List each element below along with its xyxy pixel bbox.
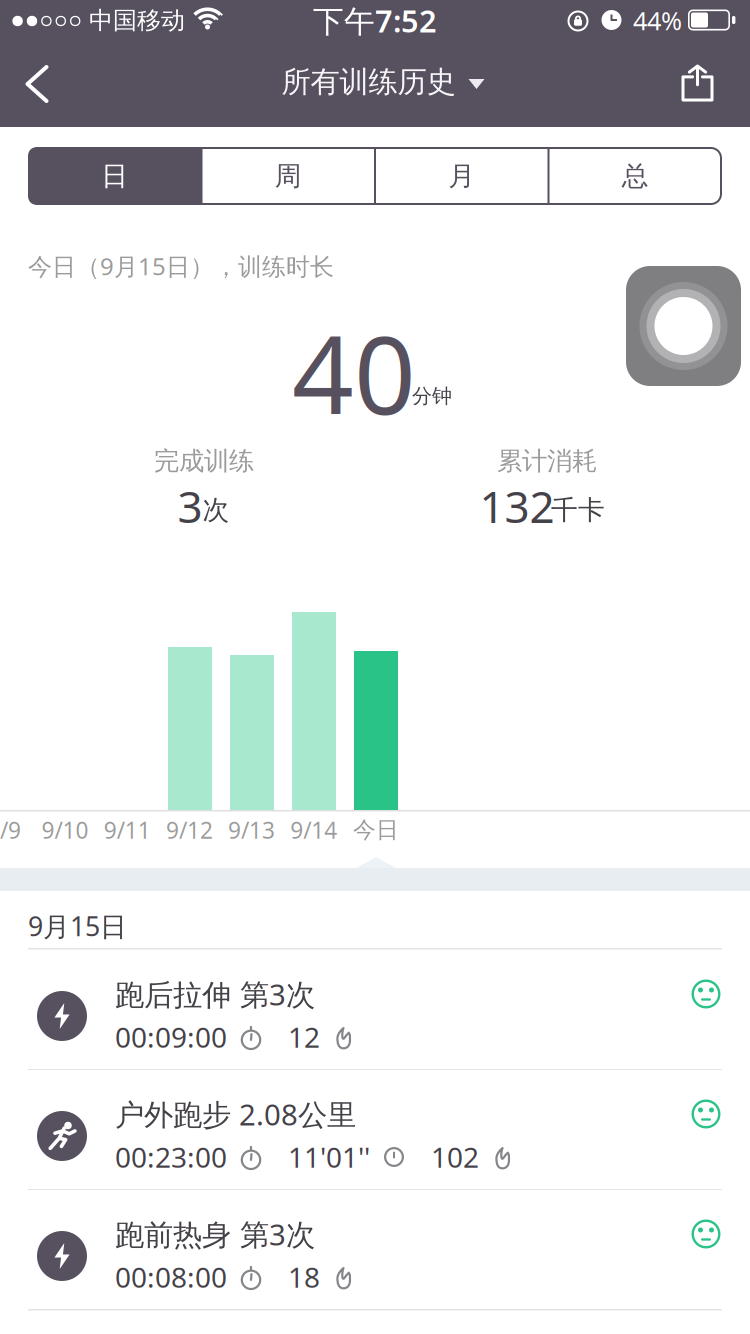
staticText: 9/12 xyxy=(166,815,213,845)
staticText: 周 xyxy=(275,160,302,192)
staticText: 户外跑步 2.08公里 xyxy=(115,1094,356,1133)
button[interactable]: 月 xyxy=(375,147,548,205)
staticText: 102 xyxy=(431,1138,479,1176)
staticText: /9 xyxy=(0,815,21,845)
staticText: 中国移动 xyxy=(89,6,185,35)
staticText: 今日（9月15日），训练时长 xyxy=(28,250,334,282)
button[interactable]: 跑前热身 第3次 xyxy=(0,1190,750,1310)
staticText: 132 xyxy=(479,477,554,535)
staticText: 9/11 xyxy=(104,815,151,845)
staticText: 所有训练历史 xyxy=(281,64,455,100)
staticText: 9/14 xyxy=(290,815,337,845)
staticText: 40 xyxy=(292,301,416,444)
staticText: 日 xyxy=(101,160,128,192)
staticText: 跑前热身 第3次 xyxy=(115,1214,315,1253)
staticText: 分钟 xyxy=(412,384,452,408)
staticText: 11'01'' xyxy=(288,1138,370,1176)
staticText: 3 xyxy=(177,477,202,535)
button[interactable]: AssistiveTouch xyxy=(626,266,741,386)
staticText: 00:08:00 xyxy=(115,1258,227,1296)
staticText: 跑后拉伸 第3次 xyxy=(115,974,315,1013)
staticText: 18 xyxy=(288,1258,320,1296)
staticText: 12 xyxy=(288,1018,320,1056)
staticText: 次 xyxy=(202,494,229,526)
button[interactable]: 日 xyxy=(28,147,201,205)
staticText: 44% xyxy=(633,4,682,37)
staticText: 下午7:52 xyxy=(313,0,437,41)
button[interactable]: 跑后拉伸 第3次 xyxy=(0,950,750,1070)
staticText: 今日 xyxy=(353,816,399,844)
button[interactable]: 总 xyxy=(548,147,722,205)
button[interactable]: 所有训练历史 xyxy=(281,60,484,104)
button[interactable]: 周 xyxy=(201,147,375,205)
staticText: 00:23:00 xyxy=(115,1138,227,1176)
staticText: 9/13 xyxy=(228,815,275,845)
button[interactable]: Back xyxy=(13,55,60,113)
staticText: 总 xyxy=(622,160,649,192)
staticText: 月 xyxy=(448,160,475,192)
staticText: 9月15日 xyxy=(28,908,127,944)
button[interactable]: 户外跑步 2.08公里 xyxy=(0,1070,750,1190)
staticText: 累计消耗 xyxy=(497,445,597,476)
staticText: 千卡 xyxy=(551,494,605,526)
button[interactable]: Share xyxy=(673,56,722,110)
staticText: 00:09:00 xyxy=(115,1018,227,1056)
staticText: 完成训练 xyxy=(154,445,254,476)
staticText: 9/10 xyxy=(41,815,88,845)
